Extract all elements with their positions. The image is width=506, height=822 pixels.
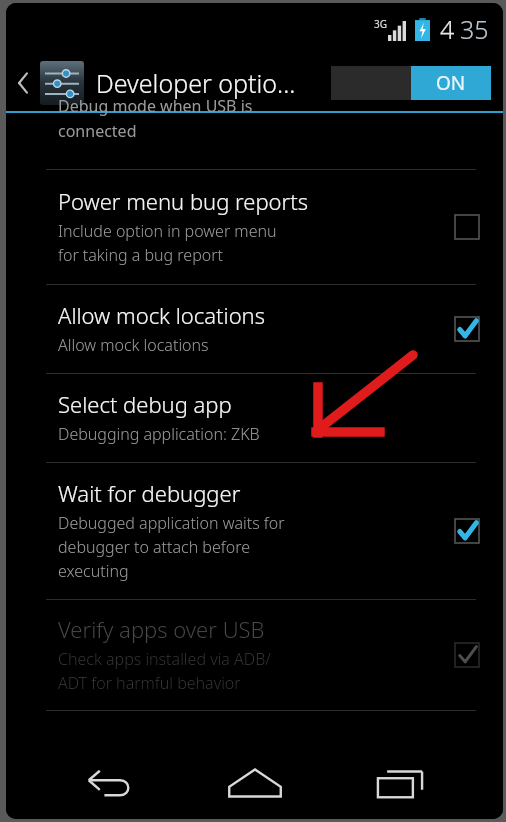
staticText: Verify apps over USB (58, 614, 265, 644)
staticText: Debugging application: ZKB (58, 423, 260, 445)
staticText: 35 (460, 12, 489, 46)
staticText: 4 (440, 12, 455, 46)
staticText: Allow mock locations (58, 334, 209, 356)
staticText: for taking a bug report (58, 244, 223, 266)
button[interactable]: Verify apps over USB (6, 600, 503, 710)
staticText: Select debug app (58, 389, 232, 419)
staticText: Debugged application waits for (58, 512, 285, 534)
staticText: Include option in power menu (58, 220, 277, 242)
button[interactable]: Recent apps (358, 753, 442, 813)
button[interactable]: Allow mock locations (6, 285, 503, 373)
button[interactable]: Power menu bug reports (6, 170, 503, 284)
button[interactable]: Unchecked (454, 214, 480, 240)
button[interactable]: Developer options on (331, 66, 491, 100)
staticText: Power menu bug reports (58, 186, 309, 216)
staticText: Check apps installed via ADB/ (58, 648, 271, 670)
staticText: ON (436, 70, 466, 96)
button[interactable]: Checked (454, 316, 480, 342)
staticText: Allow mock locations (58, 300, 265, 330)
staticText: debugger to attach before (58, 536, 250, 558)
staticText: connected (58, 120, 137, 142)
button[interactable]: Home (213, 753, 297, 813)
button[interactable]: Select debug app (6, 374, 503, 462)
button[interactable]: Checked (454, 642, 480, 668)
button[interactable]: Back (67, 753, 151, 813)
button[interactable]: Checked (454, 518, 480, 544)
button[interactable]: Navigate up (6, 55, 40, 111)
button[interactable]: Wait for debugger (6, 463, 503, 599)
staticText: executing (58, 560, 129, 582)
staticText: ADT for harmful behavior (58, 672, 241, 694)
staticText: Wait for debugger (58, 478, 241, 508)
staticText: 3G (374, 17, 387, 31)
staticText: Debug mode when USB is (58, 95, 253, 117)
staticText: Developer optio... (96, 66, 331, 100)
